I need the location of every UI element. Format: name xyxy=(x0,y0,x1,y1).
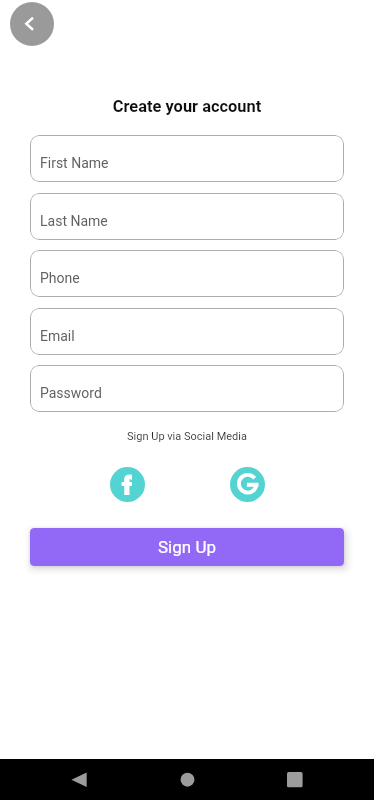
staticText: First Name xyxy=(40,155,109,171)
staticText: Password xyxy=(40,385,102,401)
button[interactable]: Phone xyxy=(30,250,344,297)
staticText: Email xyxy=(40,328,75,344)
button[interactable]: First Name xyxy=(30,135,344,182)
button[interactable]: Sign up with Facebook xyxy=(110,467,145,502)
button[interactable]: Password xyxy=(30,365,344,412)
staticText: Sign Up xyxy=(158,537,216,557)
staticText: Last Name xyxy=(40,213,108,229)
button[interactable]: Email xyxy=(30,308,344,355)
staticText: Sign Up via Social Media xyxy=(0,430,374,443)
staticText: Phone xyxy=(40,270,80,286)
button[interactable]: Sign Up xyxy=(30,528,344,566)
button[interactable]: Sign up with Google xyxy=(230,467,265,502)
button[interactable]: Last Name xyxy=(30,193,344,240)
button[interactable]: Back xyxy=(10,2,54,46)
staticText: Create your account xyxy=(0,97,374,116)
